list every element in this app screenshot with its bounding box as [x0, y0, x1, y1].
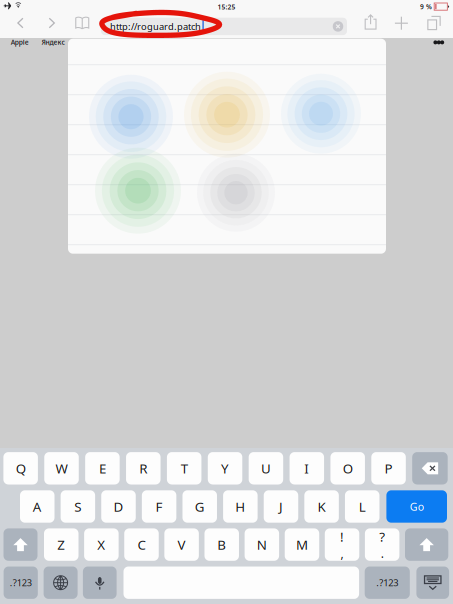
staticText: Яндекс: [42, 38, 65, 47]
button[interactable]: Go: [386, 490, 447, 523]
staticText: Z: [57, 536, 65, 553]
staticText: .: [381, 545, 384, 561]
button[interactable]: Share: [356, 10, 386, 34]
staticText: W: [55, 459, 67, 477]
staticText: X: [97, 536, 105, 553]
button[interactable]: Z: [44, 528, 78, 561]
staticText: U: [261, 459, 271, 477]
staticText: G: [195, 498, 205, 515]
button[interactable]: Bookmarks: [68, 11, 96, 35]
staticText: F: [156, 498, 163, 515]
staticText: ?: [379, 528, 385, 545]
button[interactable]: L: [345, 490, 379, 523]
button[interactable]: T: [167, 452, 201, 484]
staticText: D: [113, 498, 123, 515]
button[interactable]: H: [223, 490, 258, 523]
button[interactable]: M: [285, 528, 319, 561]
staticText: L: [359, 498, 366, 515]
button[interactable]: Forward: [39, 11, 65, 35]
button[interactable]: Яндекс: [37, 35, 69, 49]
button[interactable]: A: [20, 490, 54, 523]
button[interactable]: ?: [365, 528, 399, 561]
button[interactable]: Shift: [405, 528, 448, 561]
button[interactable]: Apple: [5, 35, 35, 49]
button[interactable]: Back: [7, 11, 33, 35]
button[interactable]: http://roguard.patch: [101, 18, 347, 35]
staticText: Y: [221, 459, 229, 477]
button[interactable]: !: [325, 528, 359, 561]
staticText: Apple: [11, 38, 29, 47]
button[interactable]: D: [101, 490, 136, 523]
button[interactable]: Space: [123, 566, 359, 599]
staticText: V: [178, 536, 186, 553]
button[interactable]: S: [61, 490, 95, 523]
staticText: P: [385, 459, 393, 477]
staticText: 9 %: [420, 2, 432, 11]
button[interactable]: B: [204, 528, 239, 561]
button[interactable]: Next keyboard: [44, 566, 78, 599]
staticText: S: [74, 498, 81, 515]
button[interactable]: C: [124, 528, 159, 561]
staticText: E: [99, 459, 106, 477]
staticText: ,: [341, 545, 344, 561]
button[interactable]: E: [85, 452, 120, 484]
button[interactable]: F: [142, 490, 176, 523]
staticText: R: [139, 459, 147, 477]
staticText: T: [181, 459, 188, 477]
staticText: .?123: [376, 576, 398, 589]
staticText: M: [296, 536, 308, 553]
staticText: Q: [16, 459, 26, 477]
staticText: A: [33, 498, 42, 515]
button[interactable]: Q: [3, 452, 38, 484]
staticText: H: [235, 498, 245, 515]
staticText: http://roguard.patch: [110, 20, 201, 33]
button[interactable]: P: [371, 452, 406, 484]
button[interactable]: Shift: [3, 528, 37, 561]
staticText: C: [137, 536, 145, 553]
staticText: 15:25: [217, 3, 235, 11]
button[interactable]: G: [182, 490, 217, 523]
button[interactable]: J: [264, 490, 298, 523]
button[interactable]: U: [249, 452, 283, 484]
button[interactable]: O: [330, 452, 365, 484]
button[interactable]: V: [164, 528, 199, 561]
button[interactable]: .?123: [365, 566, 410, 599]
button[interactable]: Delete: [412, 452, 448, 484]
button[interactable]: Hide keyboard: [416, 566, 449, 599]
staticText: K: [318, 498, 326, 515]
button[interactable]: Show tabs: [419, 11, 449, 35]
staticText: B: [217, 536, 226, 553]
button[interactable]: Y: [208, 452, 242, 484]
staticText: !: [340, 528, 344, 545]
staticText: N: [257, 536, 267, 553]
button[interactable]: I: [290, 452, 324, 484]
button[interactable]: W: [44, 452, 79, 484]
button[interactable]: R: [126, 452, 160, 484]
staticText: Go: [410, 499, 424, 514]
staticText: O: [343, 459, 353, 477]
button[interactable]: N: [245, 528, 279, 561]
button[interactable]: New tab: [386, 11, 416, 35]
button[interactable]: .?123: [4, 566, 38, 599]
staticText: I: [304, 459, 309, 477]
staticText: .?123: [10, 576, 32, 589]
button[interactable]: X: [84, 528, 119, 561]
button[interactable]: More: [424, 35, 453, 49]
button[interactable]: Dictation: [83, 566, 117, 599]
staticText: J: [279, 498, 283, 515]
button[interactable]: K: [304, 490, 339, 523]
